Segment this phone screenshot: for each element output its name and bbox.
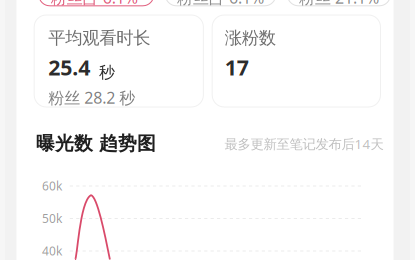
button[interactable]: 粉丝 21.1%: [287, 0, 390, 6]
staticText: 秒: [99, 62, 115, 82]
staticText: 粉丝占 6.1%: [177, 0, 264, 8]
button[interactable]: 平均观看时长: [34, 15, 203, 107]
staticText: 粉丝 21.1%: [299, 0, 379, 8]
staticText: 曝光数 趋势图: [36, 132, 156, 155]
button[interactable]: 涨粉数: [212, 15, 380, 107]
staticText: 涨粉数: [225, 27, 276, 49]
staticText: 最多更新至笔记发布后14天: [224, 135, 383, 153]
staticText: 17: [225, 53, 249, 81]
staticText: 50k: [42, 210, 62, 226]
button[interactable]: 粉丝占 6.1%: [165, 0, 276, 6]
staticText: 25.4: [48, 53, 90, 81]
staticText: 40k: [42, 243, 62, 259]
staticText: 60k: [42, 178, 62, 194]
button[interactable]: 粉丝占 6.1%: [39, 0, 154, 6]
staticText: 粉丝占 6.1%: [51, 0, 138, 8]
staticText: 平均观看时长: [48, 27, 150, 49]
staticText: 粉丝 28.2 秒: [48, 87, 135, 108]
